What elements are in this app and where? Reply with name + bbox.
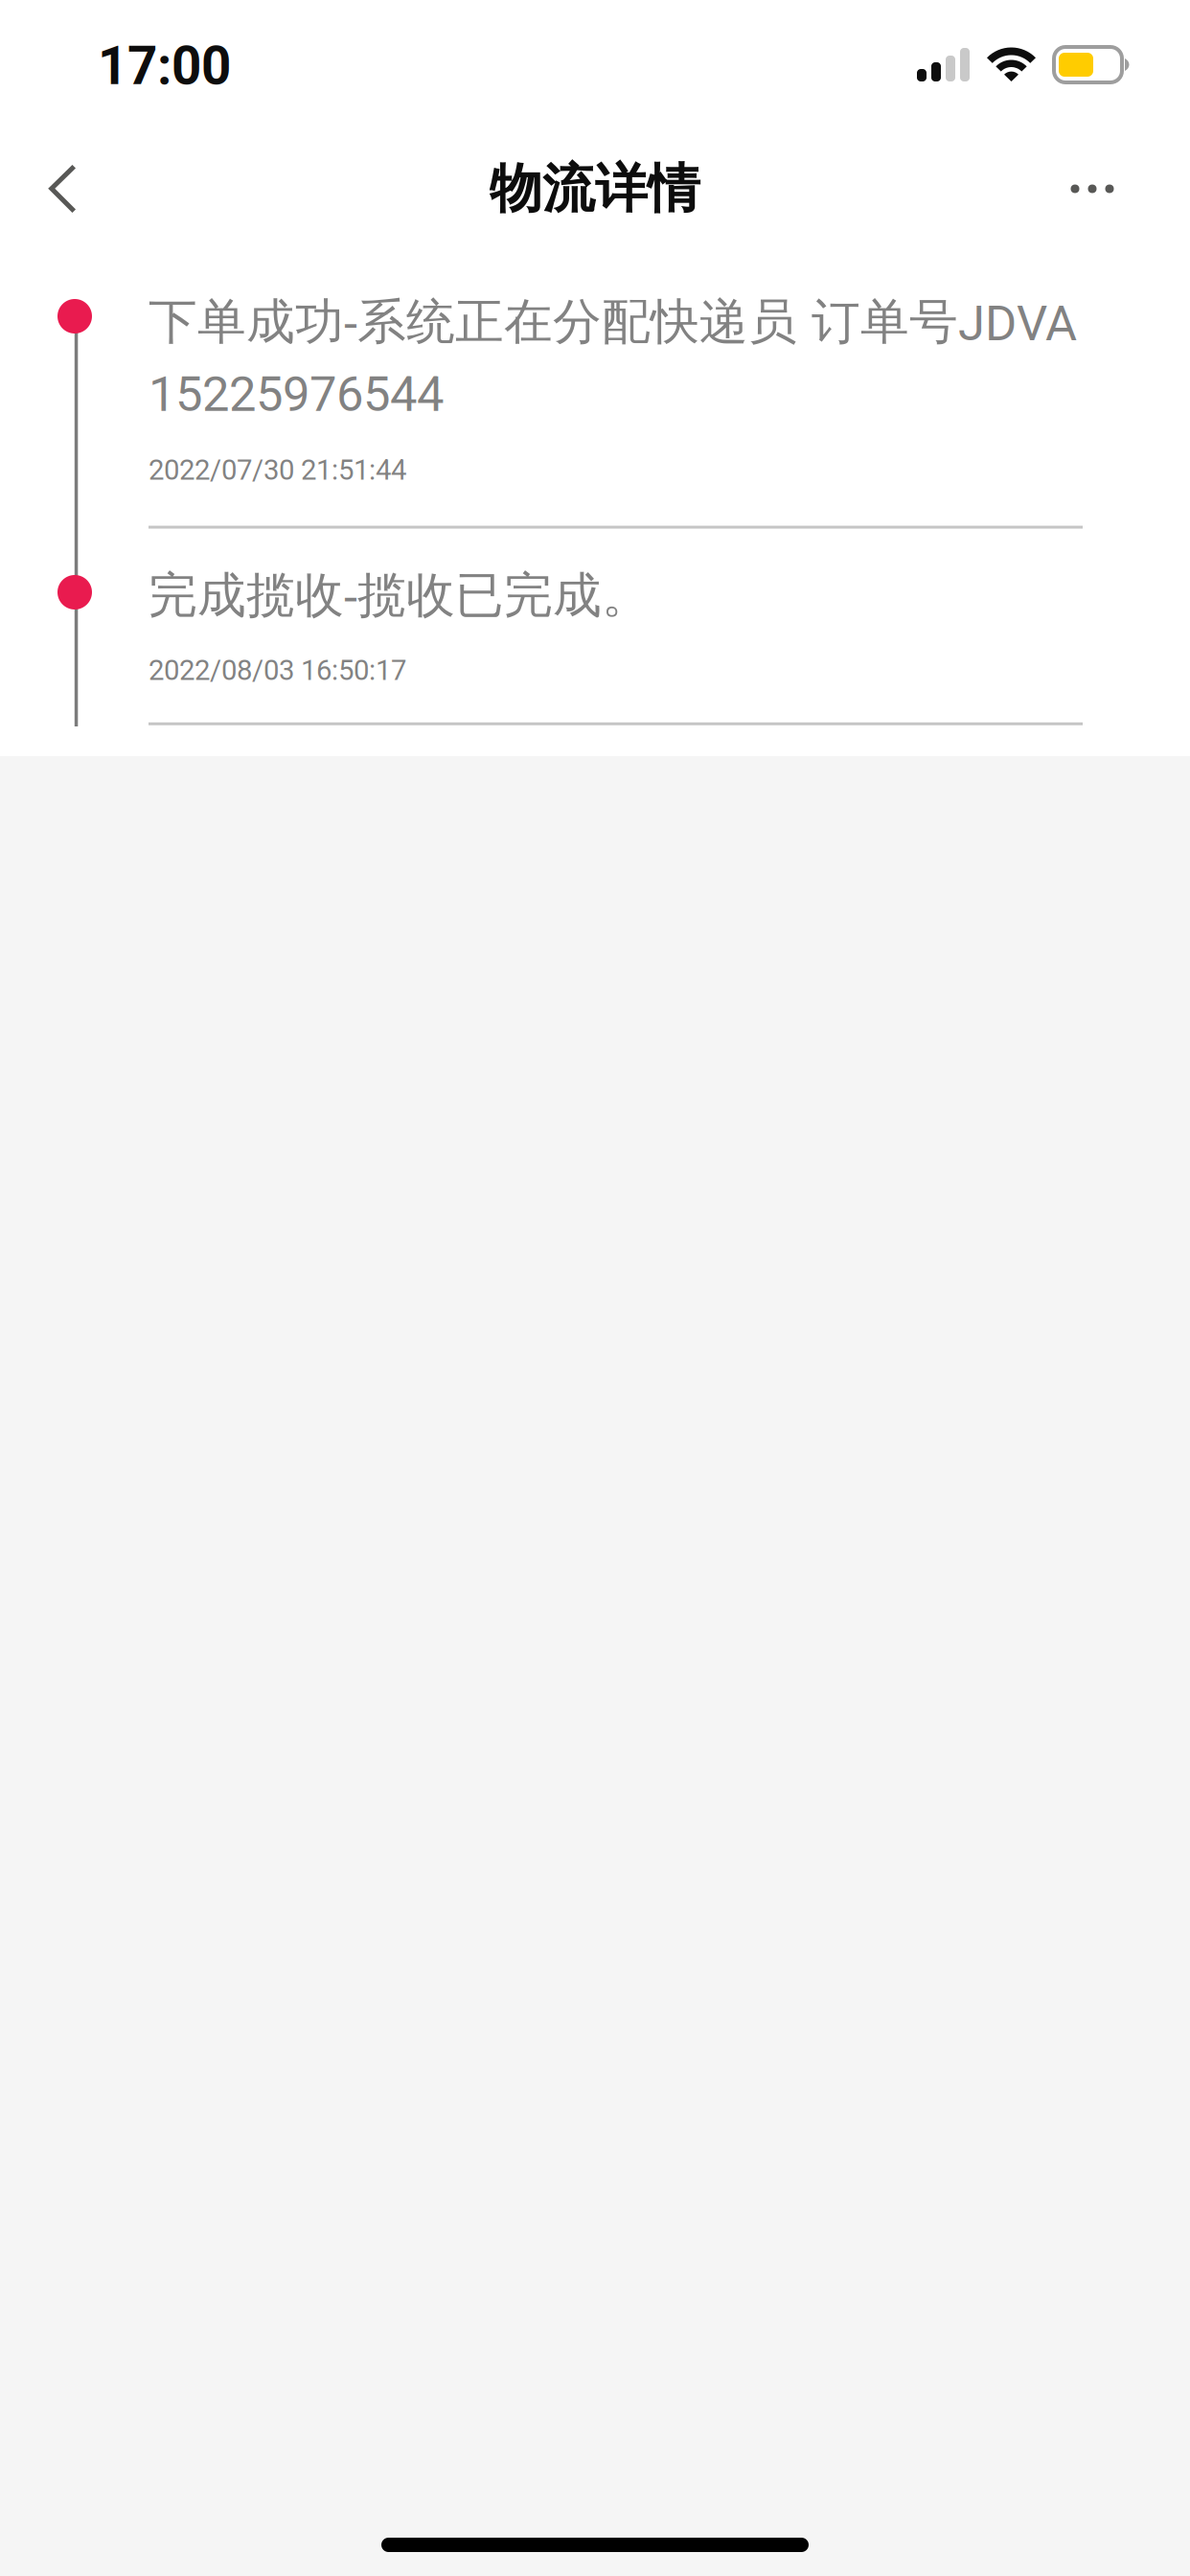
button[interactable]: Back <box>17 143 109 235</box>
button[interactable]: More options <box>1046 143 1138 235</box>
staticText: 物流详情 <box>490 156 700 222</box>
staticText: 完成揽收-揽收已完成。 <box>149 565 651 626</box>
staticText: 2022/07/30 21:51:44 <box>149 453 406 486</box>
staticText: 2022/08/03 16:50:17 <box>149 654 406 687</box>
staticText: 17:00 <box>98 35 231 97</box>
staticText: 下单成功-系统正在分配快递员 订单号JDVA 15225976544 <box>149 291 1077 423</box>
